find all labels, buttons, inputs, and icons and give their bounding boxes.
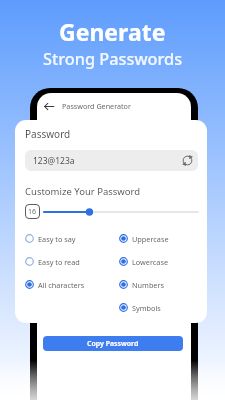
staticText: Generate [59,16,166,47]
button[interactable] [44,205,198,219]
button[interactable]: Uppercase [119,227,198,250]
staticText: Copy Password [87,339,139,349]
button[interactable]: 16 [25,204,40,219]
staticText: Strong Passwords [43,48,183,70]
staticText: Numbers [132,280,164,290]
button[interactable]: Regenerate password [181,154,194,167]
staticText: 123@123a [33,155,75,167]
staticText: Symbols [132,303,161,313]
staticText: Uppercase [132,234,169,244]
staticText: Customize Your Password [25,185,141,198]
staticText: Lowercase [132,257,169,267]
staticText: 16 [28,207,37,217]
staticText: Password Generator [62,101,131,111]
staticText: Easy to say [38,234,76,244]
button[interactable]: Easy to read [25,250,119,273]
button[interactable]: Numbers [119,273,198,296]
staticText: Password [25,127,71,141]
button[interactable]: Easy to say [25,227,119,250]
button[interactable]: 123@123a [25,150,198,171]
staticText: Easy to read [38,257,80,267]
button[interactable]: Symbols [119,296,198,319]
staticText: All characters [38,280,85,290]
button[interactable]: Lowercase [119,250,198,273]
button[interactable]: Back [44,101,55,112]
button[interactable]: Copy Password [43,336,183,351]
button[interactable]: All characters [25,273,119,296]
